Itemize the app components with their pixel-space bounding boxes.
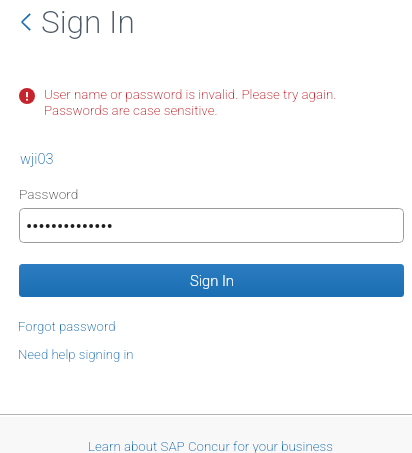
staticText: wji03 bbox=[20, 150, 54, 167]
staticText: Password bbox=[19, 186, 79, 202]
button[interactable]: Sign In bbox=[19, 264, 404, 297]
staticText: Sign In bbox=[190, 272, 234, 289]
button[interactable]: Need help signing in bbox=[18, 347, 134, 362]
button[interactable]: Back bbox=[8, 4, 44, 40]
button[interactable]: Forgot password bbox=[18, 319, 116, 334]
staticText: Sign In bbox=[41, 4, 135, 41]
button[interactable] bbox=[19, 208, 404, 243]
staticText: Forgot password bbox=[18, 319, 116, 334]
staticText: User name or password is invalid. Please… bbox=[44, 87, 376, 119]
button[interactable]: Learn about SAP Concur for your business bbox=[88, 439, 333, 453]
staticText: Need help signing in bbox=[18, 347, 134, 362]
